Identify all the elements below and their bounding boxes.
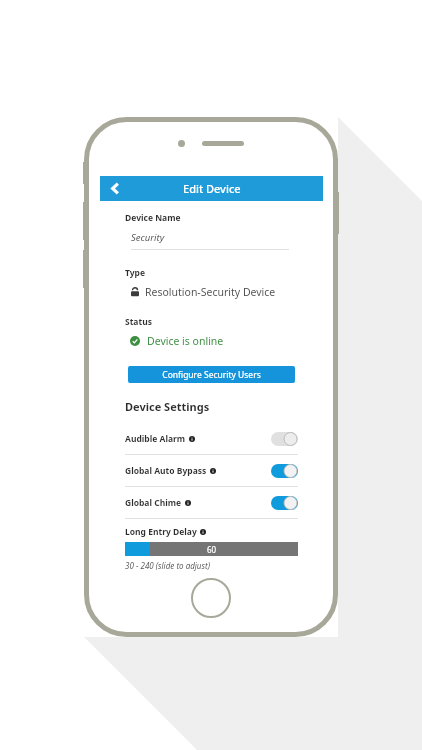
- staticText: 30 - 240 (slide to adjust): [125, 560, 211, 571]
- staticText: Resolution-Security Device: [145, 285, 276, 299]
- staticText: 60: [207, 544, 217, 555]
- staticText: Status: [125, 316, 152, 328]
- staticText: Type: [125, 267, 146, 279]
- staticText: Device is online: [147, 334, 224, 348]
- staticText: Configure Security Users: [162, 369, 261, 381]
- staticText: Edit Device: [183, 181, 241, 196]
- staticText: Device Settings: [125, 399, 210, 414]
- staticText: Audible Alarm: [125, 433, 186, 445]
- button[interactable]: Back: [100, 176, 130, 201]
- button[interactable]: Global Auto Bypass: [101, 455, 322, 486]
- staticText: Long Entry Delay: [125, 526, 197, 538]
- button[interactable]: Global Chime: [101, 487, 322, 518]
- button[interactable]: 60: [125, 542, 298, 556]
- button[interactable]: Audible Alarm: [101, 423, 322, 454]
- staticText: Global Auto Bypass: [125, 465, 207, 477]
- button[interactable]: Configure Security Users: [128, 366, 295, 383]
- staticText: Global Chime: [125, 497, 182, 509]
- staticText: Security: [131, 231, 165, 244]
- staticText: Device Name: [125, 212, 181, 224]
